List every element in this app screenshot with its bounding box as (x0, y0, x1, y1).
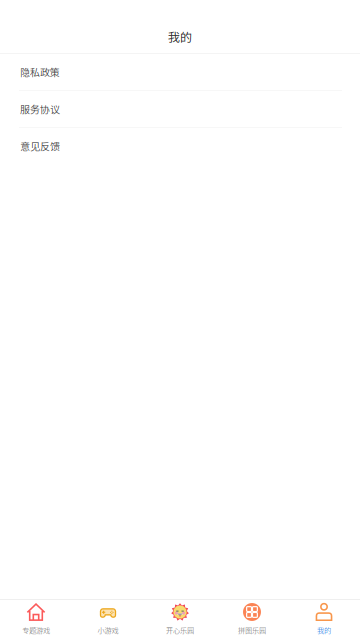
staticText: 开心乐园 (166, 625, 194, 635)
button[interactable]: 隐私政策 (0, 54, 360, 90)
staticText: 小游戏 (97, 625, 118, 635)
button[interactable]: 我的 (288, 600, 360, 640)
staticText: 隐私政策 (20, 65, 60, 79)
staticText: 专题游戏 (22, 625, 50, 635)
button[interactable]: 意见反馈 (0, 128, 360, 164)
button[interactable]: 开心乐园 (144, 600, 216, 640)
staticText: 意见反馈 (20, 139, 60, 153)
staticText: 拼图乐园 (238, 625, 266, 635)
staticText: 服务协议 (20, 102, 60, 116)
button[interactable]: 小游戏 (72, 600, 144, 640)
staticText: 我的 (168, 28, 192, 45)
button[interactable]: 专题游戏 (0, 600, 72, 640)
staticText: 我的 (317, 625, 331, 635)
button[interactable]: 服务协议 (0, 91, 360, 127)
button[interactable]: 拼图乐园 (216, 600, 288, 640)
